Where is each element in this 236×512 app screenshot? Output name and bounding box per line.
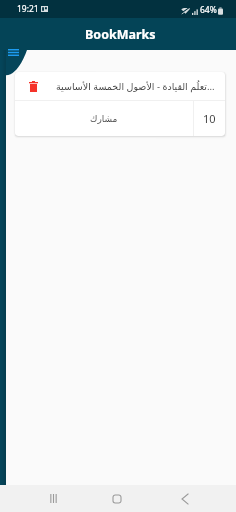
staticText: تعلُم القيادة - الأصول الخمسة الأساسية..… (56, 80, 215, 93)
staticText: مشارك (90, 114, 118, 124)
staticText: 19:21 (17, 3, 39, 15)
button[interactable]: Open navigation drawer (3, 44, 23, 61)
button[interactable]: Recent apps (38, 485, 68, 512)
button[interactable]: Delete bookmark (25, 78, 41, 94)
staticText: BookMarks (85, 26, 156, 43)
button[interactable]: 10 (194, 101, 225, 136)
button[interactable]: Home (102, 485, 132, 512)
staticText: 10 (203, 111, 216, 126)
button[interactable]: مشارك (15, 101, 193, 136)
staticText: 64% (200, 4, 217, 16)
button[interactable]: Delete bookmark (15, 72, 225, 136)
button[interactable]: Back (170, 485, 200, 512)
